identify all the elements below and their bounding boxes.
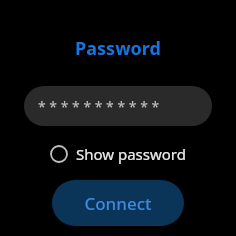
staticText: Connect [84, 192, 152, 215]
staticText: Password [75, 36, 161, 61]
button[interactable]: * * * * * * * * * * * [24, 86, 212, 126]
button[interactable]: Show password [46, 142, 190, 166]
button[interactable]: Connect [52, 180, 184, 226]
staticText: * * * * * * * * * * * [38, 97, 160, 116]
staticText: Show password [76, 144, 186, 164]
